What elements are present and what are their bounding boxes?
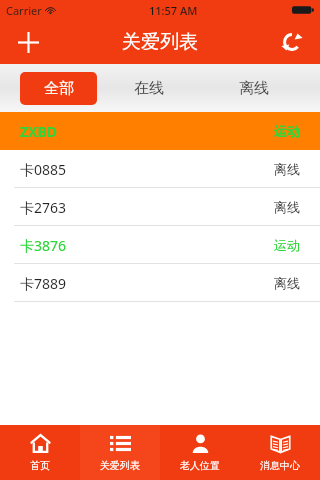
staticText: 消息中心: [260, 459, 300, 472]
staticText: 卡7889: [20, 274, 67, 293]
button[interactable]: Refresh: [272, 22, 312, 62]
staticText: 离线: [239, 79, 269, 98]
button[interactable]: 全部: [20, 72, 97, 105]
staticText: 关爱列表: [122, 30, 198, 54]
button[interactable]: 卡0885: [0, 150, 320, 188]
staticText: 首页: [30, 459, 50, 472]
staticText: 运动: [274, 123, 300, 139]
staticText: 全部: [44, 79, 74, 98]
button[interactable]: 消息中心: [240, 425, 320, 480]
staticText: 关爱列表: [100, 459, 140, 472]
staticText: 11:57 AM: [149, 3, 198, 18]
staticText: 卡3876: [20, 236, 67, 255]
button[interactable]: 卡2763: [0, 188, 320, 226]
button[interactable]: 离线: [201, 64, 306, 112]
staticText: 卡2763: [20, 198, 67, 217]
staticText: ZXBD: [20, 122, 58, 141]
staticText: 离线: [274, 199, 300, 215]
button[interactable]: 卡3876: [0, 226, 320, 264]
button[interactable]: 首页: [0, 425, 80, 480]
staticText: 老人位置: [180, 459, 220, 472]
button[interactable]: 在线: [97, 64, 201, 112]
button[interactable]: 关爱列表: [80, 425, 160, 480]
staticText: 运动: [274, 237, 300, 253]
staticText: 卡0885: [20, 160, 67, 179]
staticText: Carrier: [6, 3, 42, 18]
button[interactable]: ZXBD: [0, 112, 320, 150]
staticText: 离线: [274, 275, 300, 291]
staticText: 离线: [274, 161, 300, 177]
button[interactable]: Add: [8, 22, 48, 62]
button[interactable]: 老人位置: [160, 425, 240, 480]
staticText: 在线: [134, 79, 164, 98]
button[interactable]: 卡7889: [0, 264, 320, 302]
